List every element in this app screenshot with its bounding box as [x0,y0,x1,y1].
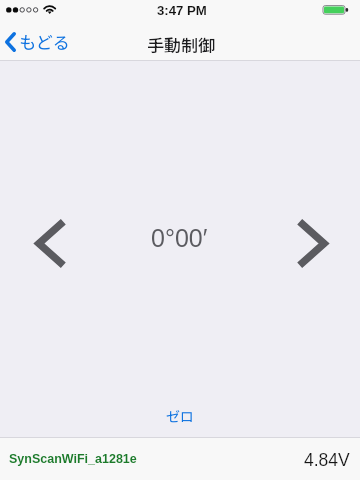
staticText: もどる [19,29,70,54]
staticText: 4.84V [304,450,350,470]
staticText: 3:47 PM [157,3,207,18]
staticText: ゼロ [166,406,194,426]
staticText: SynScanWiFi_a1281e [9,452,137,466]
button[interactable]: ゼロ [140,399,220,433]
button[interactable]: Decrease [16,200,84,286]
staticText: 手動制御 [147,32,215,57]
staticText: 0°00′ [151,224,208,252]
button[interactable]: Increase [278,200,346,286]
button[interactable]: もどる [0,24,80,57]
